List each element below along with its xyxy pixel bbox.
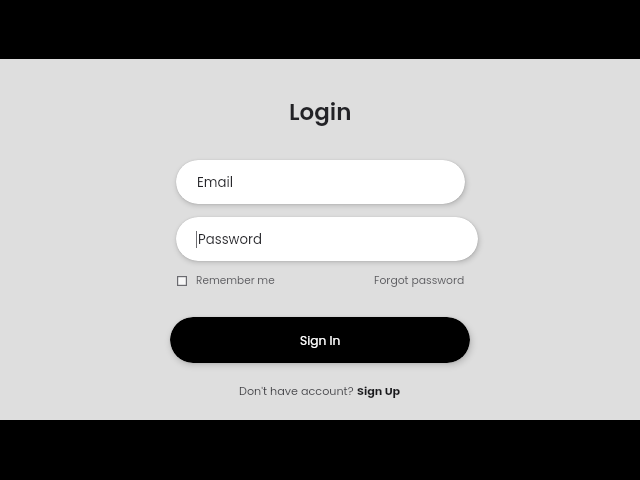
staticText: Don't have account? [239,383,357,399]
button[interactable]: Sign In [170,317,470,363]
staticText: Login [289,96,352,128]
staticText: Email [197,173,234,192]
button[interactable]: Password [176,217,478,261]
other: Remember me checkbox [177,276,187,286]
button[interactable]: Remember me checkbox [177,273,275,288]
button[interactable]: Sign Up [357,383,401,399]
staticText: Password [198,230,262,249]
staticText: Sign Up [357,383,401,399]
staticText: Forgot password [374,273,465,288]
staticText: Remember me [196,273,275,288]
button[interactable]: Email [176,160,465,204]
staticText: Sign In [300,332,341,349]
button[interactable]: Forgot password [374,273,465,288]
